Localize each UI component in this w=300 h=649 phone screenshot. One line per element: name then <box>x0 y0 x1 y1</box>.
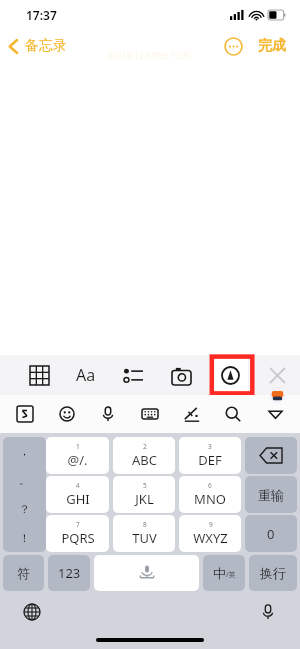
staticText: 7 <box>76 520 80 529</box>
button[interactable]: 重输 <box>245 476 297 513</box>
staticText: DEF <box>198 451 222 469</box>
button[interactable]: 备忘录 <box>0 33 77 59</box>
button[interactable]: 5 <box>113 476 175 513</box>
staticText: 换行 <box>260 565 286 581</box>
staticText: 9 <box>209 520 213 529</box>
staticText: 备忘录 <box>25 37 67 55</box>
button[interactable]: Space <box>94 555 199 591</box>
staticText: 符 <box>17 565 30 581</box>
staticText: /英 <box>226 570 236 580</box>
button[interactable]: Collapse keyboard <box>262 401 288 427</box>
staticText: GHI <box>66 490 90 508</box>
button[interactable]: Dictation <box>254 598 282 626</box>
staticText: 3 <box>208 442 212 451</box>
staticText: 完成 <box>258 37 286 55</box>
button[interactable]: 2 <box>113 437 175 474</box>
staticText: 重输 <box>258 487 284 503</box>
button[interactable]: Keyboard <box>137 401 163 427</box>
button[interactable]: Voice input <box>95 401 121 427</box>
button[interactable]: Sogou input <box>12 401 38 427</box>
staticText: PQRS <box>61 529 95 547</box>
staticText: 0 <box>267 525 275 543</box>
button[interactable]: 3 <box>179 437 241 474</box>
button[interactable]: Text format <box>69 358 103 392</box>
button[interactable]: 6 <box>179 476 241 513</box>
button[interactable]: Handwriting <box>179 401 205 427</box>
staticText: ！ <box>19 531 30 545</box>
staticText: 4 <box>76 481 80 490</box>
staticText: @/. <box>67 451 88 469</box>
button[interactable]: ！ <box>3 523 46 552</box>
button[interactable]: More options <box>220 33 246 59</box>
button[interactable]: 符 <box>3 555 44 591</box>
button[interactable]: 4 <box>46 476 109 513</box>
staticText: 2021年12月19日 17:36 <box>108 50 192 61</box>
button[interactable]: Delete <box>245 437 297 474</box>
staticText: JKL <box>135 490 154 508</box>
staticText: MNO <box>194 490 226 508</box>
button[interactable]: 完成 <box>256 33 288 59</box>
button[interactable]: 0 <box>245 515 297 552</box>
button[interactable]: 。 <box>3 465 46 494</box>
staticText: WXYZ <box>193 529 228 547</box>
button[interactable]: Switch language <box>18 598 46 626</box>
staticText: 2 <box>143 442 147 451</box>
staticText: ABC <box>132 451 157 469</box>
staticText: ， <box>19 444 30 458</box>
staticText: 5 <box>143 481 147 490</box>
button[interactable]: 123 <box>48 555 90 591</box>
staticText: 。 <box>19 473 30 487</box>
button[interactable]: ， <box>3 437 46 465</box>
button[interactable]: 8 <box>113 515 175 552</box>
button[interactable]: 9 <box>179 515 241 552</box>
button[interactable]: Search <box>220 401 246 427</box>
button[interactable]: Emoji <box>54 401 80 427</box>
staticText: TUV <box>132 529 157 547</box>
button[interactable]: Camera <box>164 358 198 392</box>
button[interactable]: Table <box>22 358 56 392</box>
button[interactable]: Close <box>262 360 292 390</box>
staticText: ？ <box>19 502 30 516</box>
button[interactable]: Checklist <box>116 358 150 392</box>
staticText: 6 <box>208 481 212 490</box>
button[interactable]: 中 <box>203 555 245 591</box>
staticText: 123 <box>58 564 81 582</box>
staticText: 8 <box>143 520 147 529</box>
button[interactable]: 换行 <box>249 555 297 591</box>
staticText: Aa <box>76 364 96 386</box>
button[interactable]: Markup <box>212 357 248 393</box>
button[interactable]: 7 <box>46 515 109 552</box>
button[interactable]: ？ <box>3 494 46 523</box>
staticText: 中 <box>213 565 226 581</box>
staticText: 1 <box>76 442 80 451</box>
staticText: 17:37 <box>26 7 57 23</box>
button[interactable]: 1 <box>46 437 109 474</box>
